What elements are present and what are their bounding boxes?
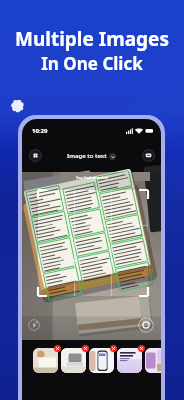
button[interactable] — [145, 348, 161, 373]
button[interactable]: Saved documents — [142, 149, 155, 162]
button[interactable]: Remove image — [54, 345, 61, 352]
staticText: Your limit exceeded! — [76, 175, 108, 179]
staticText: In One Click — [41, 52, 143, 75]
button[interactable]: Image to text — [67, 152, 116, 160]
button[interactable] — [117, 348, 142, 373]
staticText: Multiple Images — [15, 26, 169, 52]
button[interactable]: Remove image — [82, 345, 89, 352]
button[interactable] — [33, 348, 58, 373]
button[interactable]: Grid menu — [29, 149, 42, 162]
button[interactable] — [89, 348, 114, 373]
button[interactable]: Remove image — [110, 345, 117, 352]
staticText: 10:29 — [32, 127, 48, 135]
button[interactable]: Remove image — [138, 345, 145, 352]
button[interactable]: Flash — [28, 319, 40, 331]
staticText: Image to text — [67, 152, 107, 160]
button[interactable] — [61, 348, 86, 373]
button[interactable]: Capture photo — [138, 317, 154, 333]
